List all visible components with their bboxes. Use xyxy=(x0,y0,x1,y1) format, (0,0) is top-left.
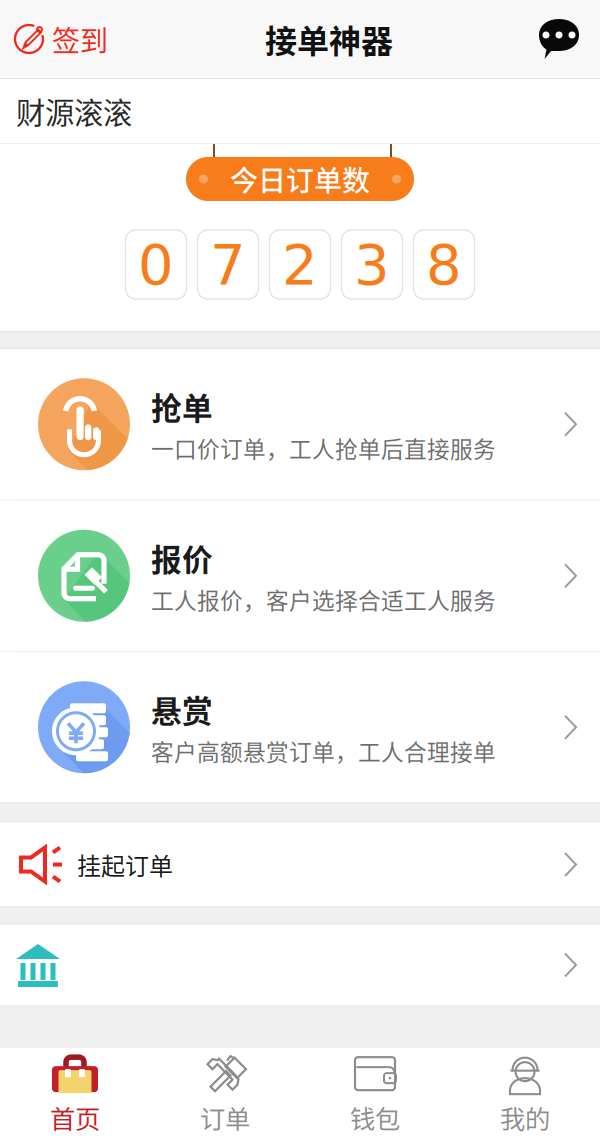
staticText: 钱包 xyxy=(350,1099,400,1136)
staticText: 0 xyxy=(138,232,174,297)
staticText: 财源滚滚 xyxy=(16,90,132,132)
button[interactable]: 报价 xyxy=(0,500,600,651)
button[interactable]: Messages xyxy=(536,0,600,78)
staticText: 报价 xyxy=(151,536,213,580)
button[interactable]: 抢单 xyxy=(0,349,600,499)
button[interactable]: 钱包 xyxy=(300,1048,450,1141)
staticText: 一口价订单，工人抢单后直接服务 xyxy=(151,431,496,464)
button[interactable]: 悬赏 xyxy=(0,652,600,802)
staticText: 3 xyxy=(354,232,390,297)
staticText: 抢单 xyxy=(151,384,213,428)
staticText: 订单 xyxy=(200,1099,250,1136)
staticText: 我的 xyxy=(500,1099,550,1136)
staticText: 悬赏 xyxy=(151,687,213,731)
button[interactable]: 挂起订单 xyxy=(0,822,600,906)
staticText: 首页 xyxy=(50,1099,100,1136)
button[interactable]: Bank xyxy=(0,924,600,1005)
button[interactable]: 首页 xyxy=(0,1048,150,1141)
staticText: 工人报价，客户选择合适工人服务 xyxy=(151,583,496,616)
staticText: 8 xyxy=(426,232,462,297)
staticText: 客户高额悬赏订单，工人合理接单 xyxy=(151,734,496,767)
staticText: 挂起订单 xyxy=(77,847,173,882)
button[interactable]: 签到 xyxy=(0,0,120,78)
staticText: 7 xyxy=(210,232,246,297)
button[interactable]: 订单 xyxy=(150,1048,300,1141)
staticText: 签到 xyxy=(52,19,108,59)
staticText: 2 xyxy=(282,232,318,297)
staticText: 今日订单数 xyxy=(230,159,370,199)
staticText: 接单神器 xyxy=(265,16,393,62)
button[interactable]: 我的 xyxy=(450,1048,600,1141)
